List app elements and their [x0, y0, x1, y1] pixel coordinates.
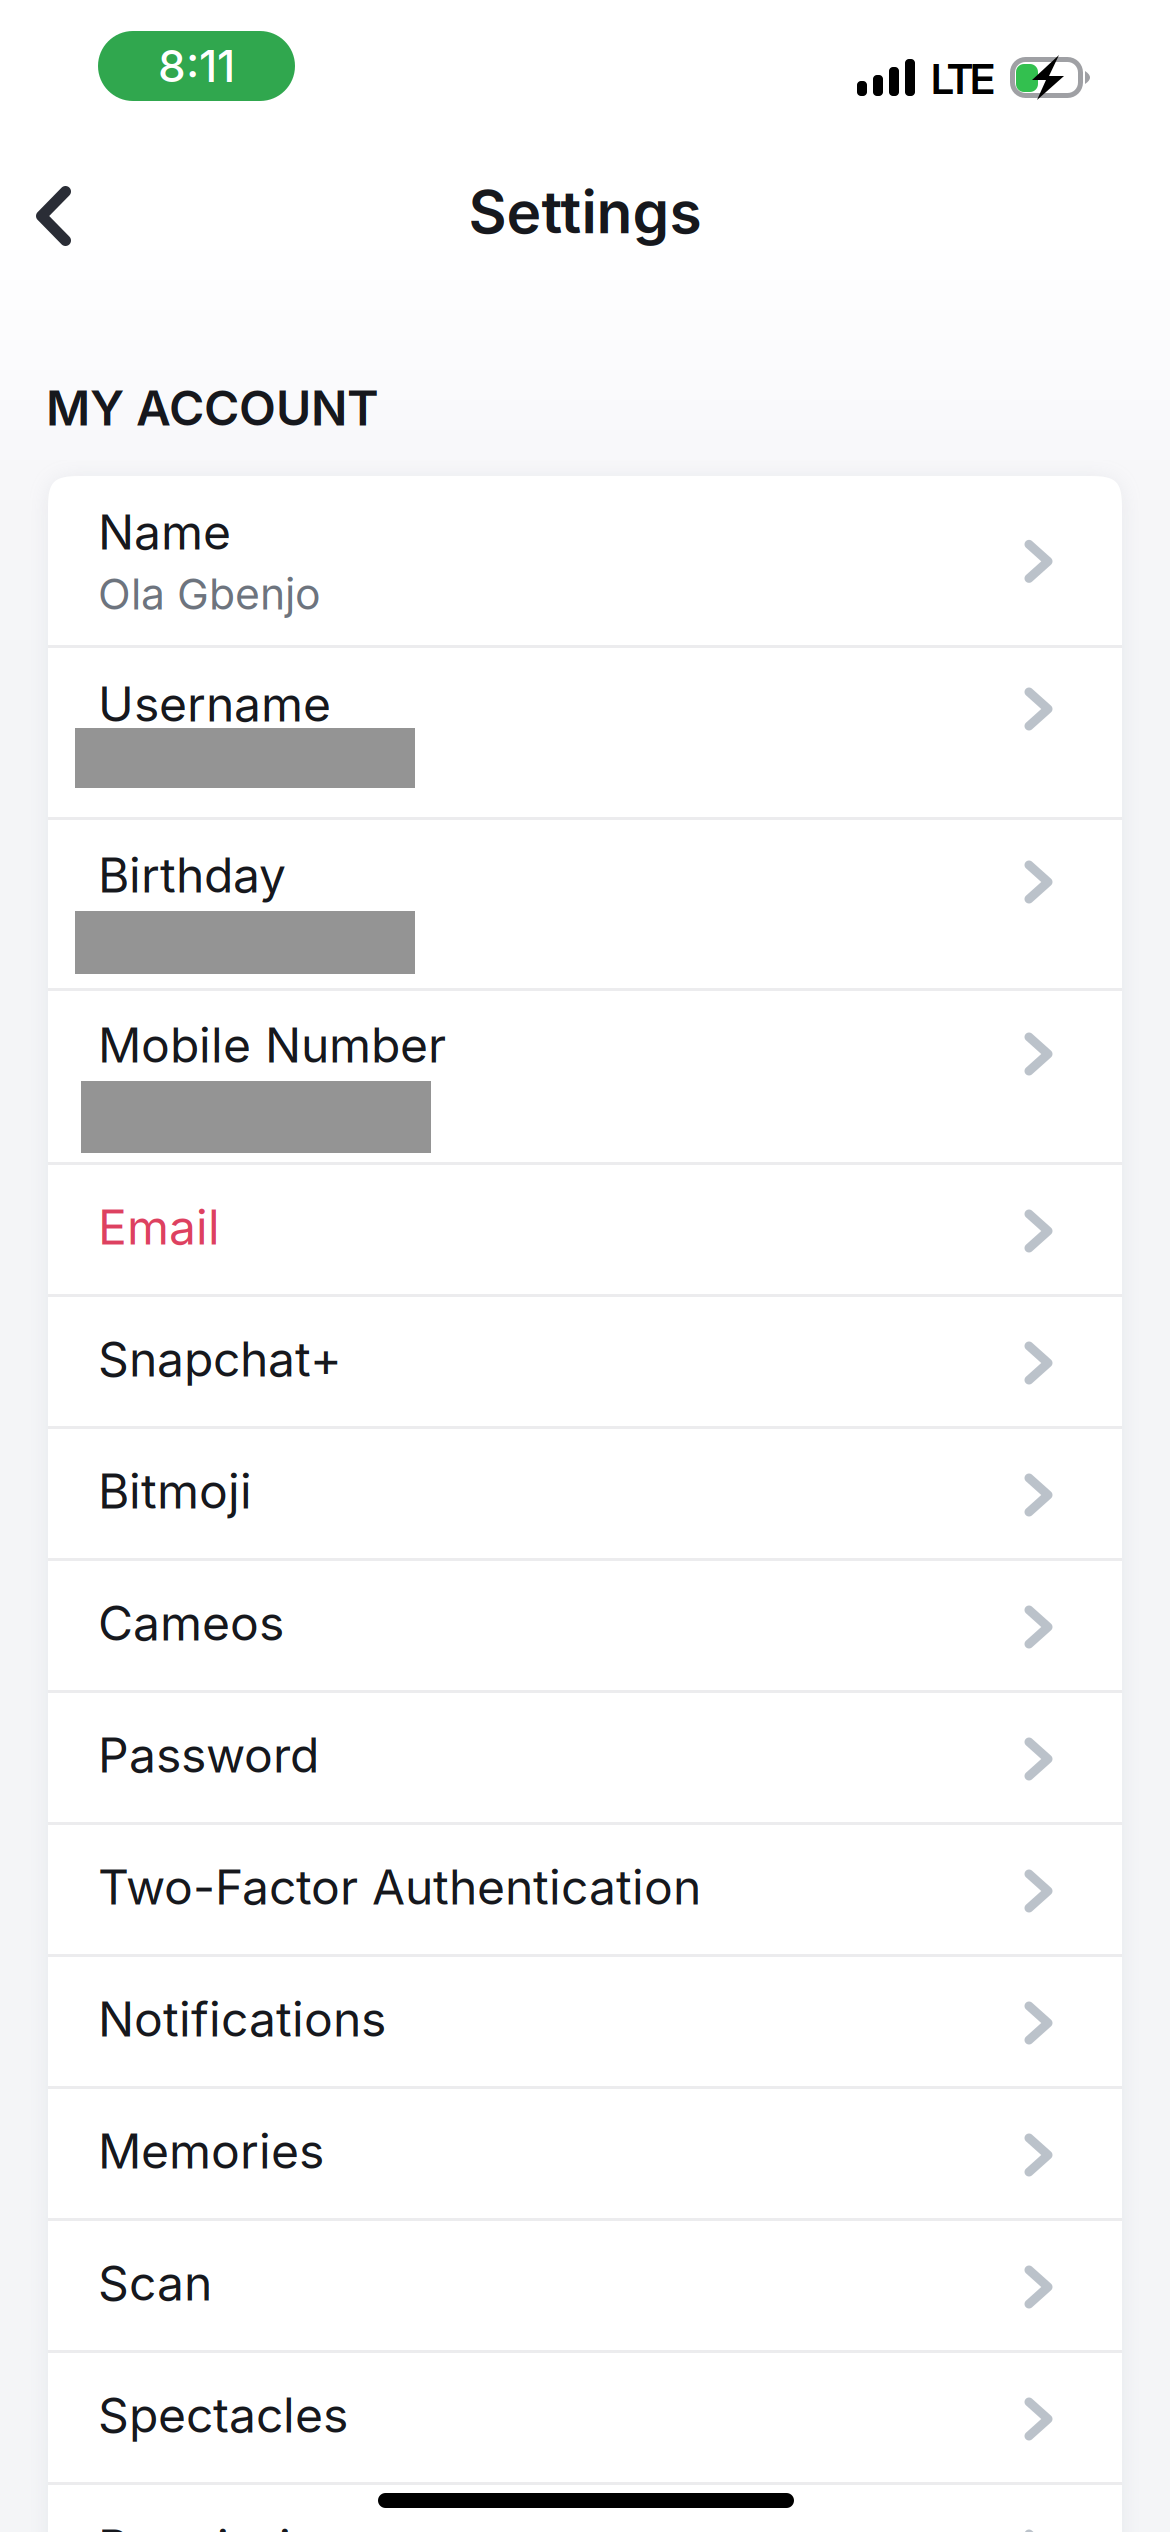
button[interactable]: Permissions: [48, 2485, 1122, 2532]
button[interactable]: Cameos: [48, 1561, 1122, 1693]
button[interactable]: Two-Factor Authentication: [48, 1825, 1122, 1957]
staticText: Permissions: [98, 2518, 373, 2532]
staticText: Cameos: [98, 1594, 284, 1652]
staticText: Two-Factor Authentication: [98, 1858, 701, 1916]
staticText: Bitmoji: [98, 1462, 252, 1520]
staticText: Memories: [98, 2122, 324, 2180]
button[interactable]: Spectacles: [48, 2353, 1122, 2485]
staticText: Notifications: [98, 1990, 386, 2048]
staticText: Spectacles: [98, 2386, 348, 2444]
button[interactable]: Bitmoji: [48, 1429, 1122, 1561]
button[interactable]: Password: [48, 1693, 1122, 1825]
staticText: Email: [98, 1198, 220, 1256]
staticText: Scan: [98, 2254, 212, 2312]
button[interactable]: Scan: [48, 2221, 1122, 2353]
button[interactable]: Notifications: [48, 1957, 1122, 2089]
staticText: Birthday: [98, 846, 286, 904]
staticText: Password: [98, 1726, 319, 1784]
button[interactable]: Memories: [48, 2089, 1122, 2221]
button[interactable]: Back: [0, 151, 122, 281]
button[interactable]: Mobile Number: [48, 991, 1122, 1165]
button[interactable]: Username: [48, 648, 1122, 820]
staticText: Settings: [468, 176, 701, 247]
staticText: Snapchat+: [98, 1330, 342, 1388]
button[interactable]: Email: [48, 1165, 1122, 1297]
button[interactable]: Birthday: [48, 820, 1122, 991]
button[interactable]: Name: [48, 476, 1122, 648]
staticText: 8:11: [158, 39, 235, 93]
staticText: LTE: [931, 54, 995, 104]
staticText: Mobile Number: [98, 1016, 446, 1074]
staticText: MY ACCOUNT: [46, 379, 379, 437]
staticText: Username: [98, 675, 331, 733]
button[interactable]: Snapchat+: [48, 1297, 1122, 1429]
staticText: Ola Gbenjo: [98, 568, 321, 620]
staticText: Name: [98, 503, 231, 561]
